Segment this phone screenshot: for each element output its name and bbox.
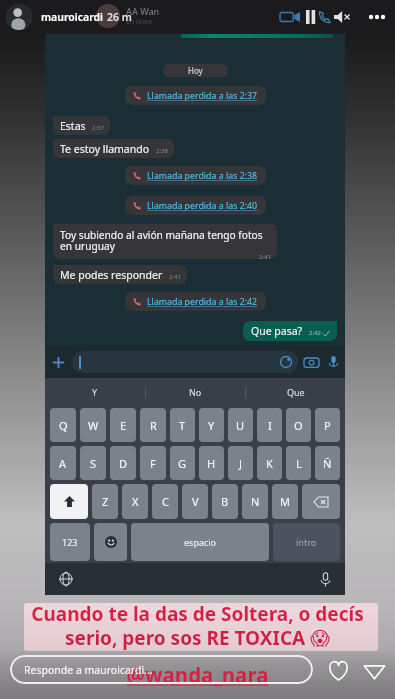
button[interactable]: J [228, 446, 253, 480]
button[interactable]: Llamada perdida a las 2:40 [125, 196, 266, 215]
staticText: 2:41 [169, 273, 181, 281]
button[interactable]: F [140, 446, 166, 480]
staticText: 26 m [107, 10, 132, 24]
staticText: Z [102, 494, 109, 509]
button[interactable]: X [122, 484, 148, 519]
staticText: W [88, 418, 99, 433]
staticText: P [324, 418, 331, 433]
staticText: 2:42 [309, 329, 321, 337]
staticText: H [207, 456, 216, 471]
button[interactable]: N [242, 484, 268, 519]
button[interactable]: Que [246, 378, 345, 406]
staticText: I [268, 418, 272, 433]
staticText: Que pasa? [251, 324, 303, 338]
button[interactable]: Shift [50, 484, 88, 519]
button[interactable]: Ñ [315, 446, 340, 480]
button[interactable]: Voice input [320, 572, 331, 587]
button[interactable]: M [272, 484, 298, 519]
staticText: O [294, 418, 303, 433]
button[interactable]: Y [199, 408, 224, 442]
staticText: Responde a mauroicardi... [24, 663, 153, 677]
button[interactable]: P [315, 408, 340, 442]
staticText: Cuando te la das de Soltera, o decís ser… [0, 601, 395, 651]
button[interactable]: Llamada perdida a las 2:42 [125, 292, 266, 311]
button[interactable]: Z [92, 484, 118, 519]
button[interactable] [72, 351, 298, 373]
staticText: N [251, 494, 260, 509]
button[interactable]: Y [45, 378, 145, 406]
button[interactable]: H [199, 446, 224, 480]
button[interactable]: K [257, 446, 282, 480]
button[interactable]: C [152, 484, 178, 519]
button[interactable]: L [286, 446, 311, 480]
button[interactable]: Change language [59, 572, 73, 586]
staticText: intro [296, 536, 317, 548]
button[interactable]: O [286, 408, 311, 442]
staticText: No [189, 386, 202, 398]
button[interactable]: espacio [131, 523, 269, 561]
staticText: B [221, 494, 229, 509]
staticText: Llamada perdida a las 2:37 [147, 90, 258, 102]
button[interactable]: T [170, 408, 195, 442]
button[interactable]: I [257, 408, 282, 442]
staticText: S [90, 456, 97, 471]
button[interactable]: A [50, 446, 76, 480]
staticText: U [236, 418, 245, 433]
button[interactable]: Camera [304, 355, 319, 370]
staticText: Ñ [323, 456, 332, 471]
button[interactable]: D [110, 446, 136, 480]
staticText: R [150, 418, 157, 433]
staticText: Q [59, 418, 68, 433]
staticText: T [179, 418, 186, 433]
button[interactable]: intro [273, 523, 340, 561]
staticText: @wanda_nara [0, 661, 395, 689]
staticText: Que [287, 386, 305, 398]
staticText: AA Wan [126, 5, 160, 17]
button[interactable]: B [212, 484, 238, 519]
staticText: X [132, 494, 139, 509]
button[interactable]: Profile [6, 4, 32, 30]
staticText: Estas [60, 119, 86, 133]
staticText: F [150, 456, 156, 471]
button[interactable]: Attach [50, 354, 67, 371]
staticText: A [59, 456, 67, 471]
button[interactable]: W [80, 408, 106, 442]
button[interactable]: No [146, 378, 245, 406]
staticText: mauroicardi [41, 10, 104, 24]
staticText: Me podes responder [60, 268, 163, 282]
button[interactable]: G [170, 446, 195, 480]
button[interactable]: More options [367, 7, 387, 27]
button[interactable]: E [110, 408, 136, 442]
staticText: 2:41 [60, 253, 271, 259]
button[interactable]: Q [50, 408, 76, 442]
button[interactable]: Emoji [94, 523, 127, 561]
staticText: G [178, 456, 187, 471]
staticText: Llamada perdida a las 2:40 [147, 200, 258, 212]
staticText: Te estoy llamando [60, 142, 150, 156]
staticText: Toy subiendo al avión mañana tengo fotos… [60, 228, 271, 253]
button[interactable]: S [80, 446, 106, 480]
staticText: D [119, 456, 128, 471]
staticText: 123 [62, 536, 78, 548]
staticText: Y [92, 386, 98, 398]
staticText: espacio [184, 536, 217, 548]
button[interactable]: Backspace [302, 484, 340, 519]
staticText: Llamada perdida a las 2:42 [147, 296, 258, 308]
staticText: 2:37 [92, 124, 104, 132]
staticText: M [280, 494, 290, 509]
button[interactable]: R [140, 408, 166, 442]
staticText: C [162, 494, 169, 509]
staticText: Hoy [188, 65, 203, 76]
button[interactable]: V [182, 484, 208, 519]
button[interactable]: Send message [361, 657, 387, 683]
button[interactable]: U [228, 408, 253, 442]
button[interactable]: Llamada perdida a las 2:37 [125, 86, 266, 105]
button[interactable]: Responde a mauroicardi... [10, 655, 313, 684]
button[interactable]: Llamada perdida a las 2:38 [125, 166, 266, 185]
staticText: L [296, 456, 302, 471]
staticText: Y [208, 418, 215, 433]
button[interactable]: 123 [50, 523, 90, 561]
button[interactable]: Voice message [327, 356, 340, 369]
button[interactable]: Like [325, 657, 351, 683]
staticText: K [266, 456, 273, 471]
